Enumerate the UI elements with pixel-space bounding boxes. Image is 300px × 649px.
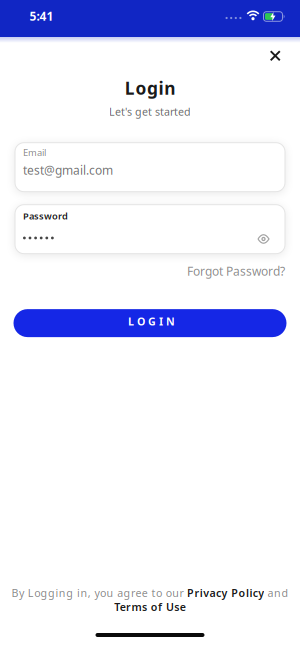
- button[interactable]: [270, 50, 280, 61]
- staticText: Email: [23, 146, 46, 159]
- button[interactable]: LOGIN: [0, 309, 300, 337]
- staticText: Login: [125, 76, 175, 99]
- button[interactable]: Email: [0, 143, 300, 192]
- button[interactable]: Privacy Policy: [187, 586, 264, 600]
- button[interactable]: Terms of Use: [114, 600, 186, 614]
- staticText: Privacy Policy: [187, 586, 264, 600]
- button[interactable]: Password: [0, 205, 300, 254]
- staticText: LOGIN: [128, 314, 175, 328]
- staticText: By Logging in, you agree to our: [12, 586, 187, 600]
- staticText: and: [264, 586, 288, 600]
- staticText: Forgot Password?: [187, 263, 285, 279]
- staticText: Password: [23, 210, 68, 222]
- button[interactable]: [258, 235, 285, 243]
- button[interactable]: Forgot Password?: [187, 263, 285, 279]
- staticText: test@gmail.com: [23, 162, 113, 178]
- staticText: Terms of Use: [114, 600, 186, 614]
- staticText: Let's get started: [109, 104, 191, 119]
- staticText: 5:41: [29, 8, 53, 24]
